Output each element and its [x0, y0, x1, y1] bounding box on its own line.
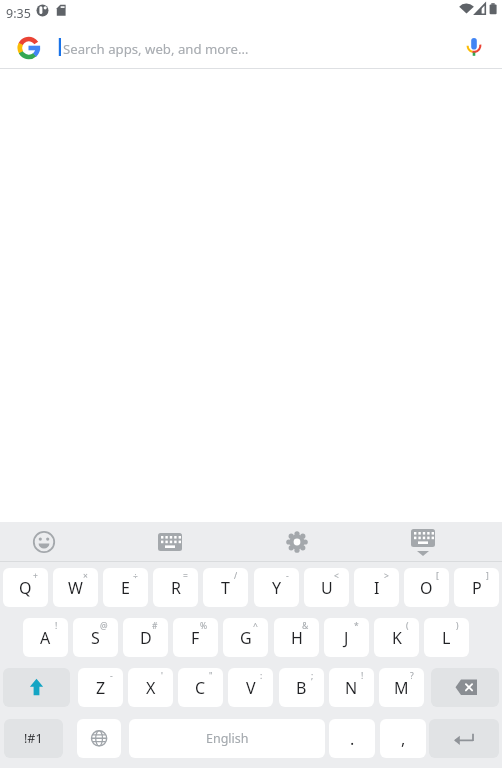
button[interactable]: !#1 — [4, 719, 63, 758]
button[interactable]: P — [454, 568, 499, 607]
button[interactable] — [154, 526, 186, 558]
staticText: # — [152, 620, 158, 632]
button[interactable]: A — [23, 618, 68, 657]
staticText: × — [83, 570, 88, 582]
staticText: 9:35 — [6, 5, 31, 22]
button[interactable] — [460, 32, 490, 62]
button[interactable]: Z — [78, 668, 123, 707]
staticText: T — [221, 577, 230, 599]
button[interactable]: B — [279, 668, 324, 707]
staticText: K — [392, 627, 402, 649]
button[interactable]: U — [304, 568, 349, 607]
staticText: & — [302, 620, 309, 632]
button[interactable]: F — [173, 618, 218, 657]
button[interactable]: Y — [254, 568, 299, 607]
button[interactable]: J — [324, 618, 369, 657]
staticText: G — [240, 627, 252, 649]
button[interactable]: E — [103, 568, 148, 607]
staticText: > — [384, 570, 389, 582]
button[interactable]: N — [329, 668, 374, 707]
button[interactable] — [431, 668, 499, 707]
button[interactable] — [3, 668, 70, 707]
staticText: !#1 — [24, 730, 43, 747]
staticText: F — [191, 627, 200, 649]
button[interactable]: H — [274, 618, 319, 657]
staticText: ' — [161, 670, 163, 682]
staticText: = — [183, 570, 188, 582]
staticText: Z — [96, 677, 106, 699]
staticText: < — [334, 570, 339, 582]
staticText: A — [40, 627, 51, 649]
staticText: , — [401, 728, 406, 750]
staticText: ÷ — [133, 570, 138, 582]
button[interactable] — [0, 24, 502, 69]
staticText: V — [246, 677, 256, 699]
button[interactable] — [28, 526, 60, 558]
staticText: M — [394, 677, 409, 699]
staticText: ? — [410, 670, 414, 682]
staticText: . — [350, 728, 355, 750]
staticText: J — [344, 627, 349, 649]
button[interactable]: L — [424, 618, 469, 657]
button[interactable]: K — [374, 618, 419, 657]
staticText: - — [110, 670, 113, 682]
staticText: R — [171, 577, 181, 599]
staticText: + — [33, 570, 38, 582]
button[interactable] — [407, 524, 439, 560]
button[interactable]: D — [123, 618, 168, 657]
button[interactable]: O — [404, 568, 449, 607]
staticText: - — [286, 570, 289, 582]
staticText: I — [374, 577, 380, 599]
staticText: Y — [272, 577, 282, 599]
staticText: ! — [361, 670, 364, 682]
button[interactable]: M — [379, 668, 424, 707]
staticText: ! — [55, 620, 58, 632]
staticText: Search apps, web, and more… — [63, 40, 249, 58]
staticText: L — [442, 627, 451, 649]
staticText: D — [140, 627, 152, 649]
staticText: Q — [19, 577, 32, 599]
button[interactable]: R — [153, 568, 198, 607]
button[interactable]: X — [128, 668, 173, 707]
staticText: * — [354, 620, 359, 632]
staticText: ( — [406, 620, 409, 632]
button[interactable] — [281, 526, 313, 558]
staticText: % — [200, 620, 208, 632]
staticText: ^ — [253, 620, 258, 632]
staticText: W — [68, 577, 83, 599]
staticText: ; — [311, 670, 314, 682]
button[interactable]: , — [380, 719, 426, 758]
staticText: ] — [486, 570, 489, 582]
staticText: E — [121, 577, 130, 599]
staticText: O — [420, 577, 433, 599]
button[interactable]: T — [203, 568, 248, 607]
staticText: @ — [100, 620, 108, 632]
staticText: H — [291, 627, 303, 649]
staticText: " — [209, 670, 213, 682]
staticText: U — [321, 577, 333, 599]
button[interactable]: Q — [3, 568, 48, 607]
staticText: English — [206, 730, 249, 747]
button[interactable]: W — [53, 568, 98, 607]
staticText: N — [345, 677, 358, 699]
button[interactable]: I — [354, 568, 399, 607]
staticText: ) — [456, 620, 459, 632]
staticText: B — [296, 677, 307, 699]
button[interactable]: . — [329, 719, 375, 758]
staticText: C — [195, 677, 206, 699]
staticText: P — [472, 577, 482, 599]
button[interactable]: V — [228, 668, 273, 707]
button[interactable]: C — [178, 668, 223, 707]
staticText: [ — [436, 570, 439, 582]
button[interactable]: English — [129, 719, 325, 758]
button[interactable]: S — [73, 618, 118, 657]
button[interactable] — [429, 719, 499, 758]
button[interactable] — [77, 719, 121, 758]
button[interactable]: G — [223, 618, 268, 657]
staticText: S — [91, 627, 100, 649]
staticText: X — [146, 677, 156, 699]
staticText: : — [260, 670, 263, 682]
staticText: / — [234, 570, 238, 582]
